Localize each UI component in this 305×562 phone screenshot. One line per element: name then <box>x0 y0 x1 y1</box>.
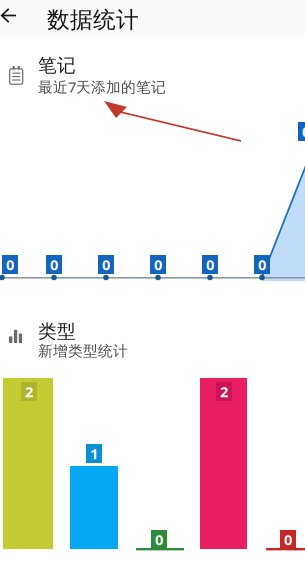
staticText: 0 <box>102 255 110 274</box>
staticText: 0 <box>6 255 14 274</box>
staticText: 笔记 <box>38 54 76 77</box>
staticText: 0 <box>258 255 266 274</box>
staticText: 数据统计 <box>47 6 139 34</box>
staticText: 2 <box>220 382 228 401</box>
staticText: 0 <box>154 255 162 274</box>
staticText: 0 <box>302 122 305 141</box>
staticText: 新增类型统计 <box>38 342 128 360</box>
staticText: 类型 <box>38 320 76 343</box>
staticText: 0 <box>50 255 58 274</box>
staticText: 1 <box>90 444 98 463</box>
staticText: 0 <box>206 255 214 274</box>
staticText: 2 <box>25 382 33 401</box>
staticText: 0 <box>155 530 163 549</box>
button[interactable]: 返回 <box>0 0 32 37</box>
staticText: 最近7天添加的笔记 <box>38 77 166 96</box>
staticText: 0 <box>284 530 292 549</box>
